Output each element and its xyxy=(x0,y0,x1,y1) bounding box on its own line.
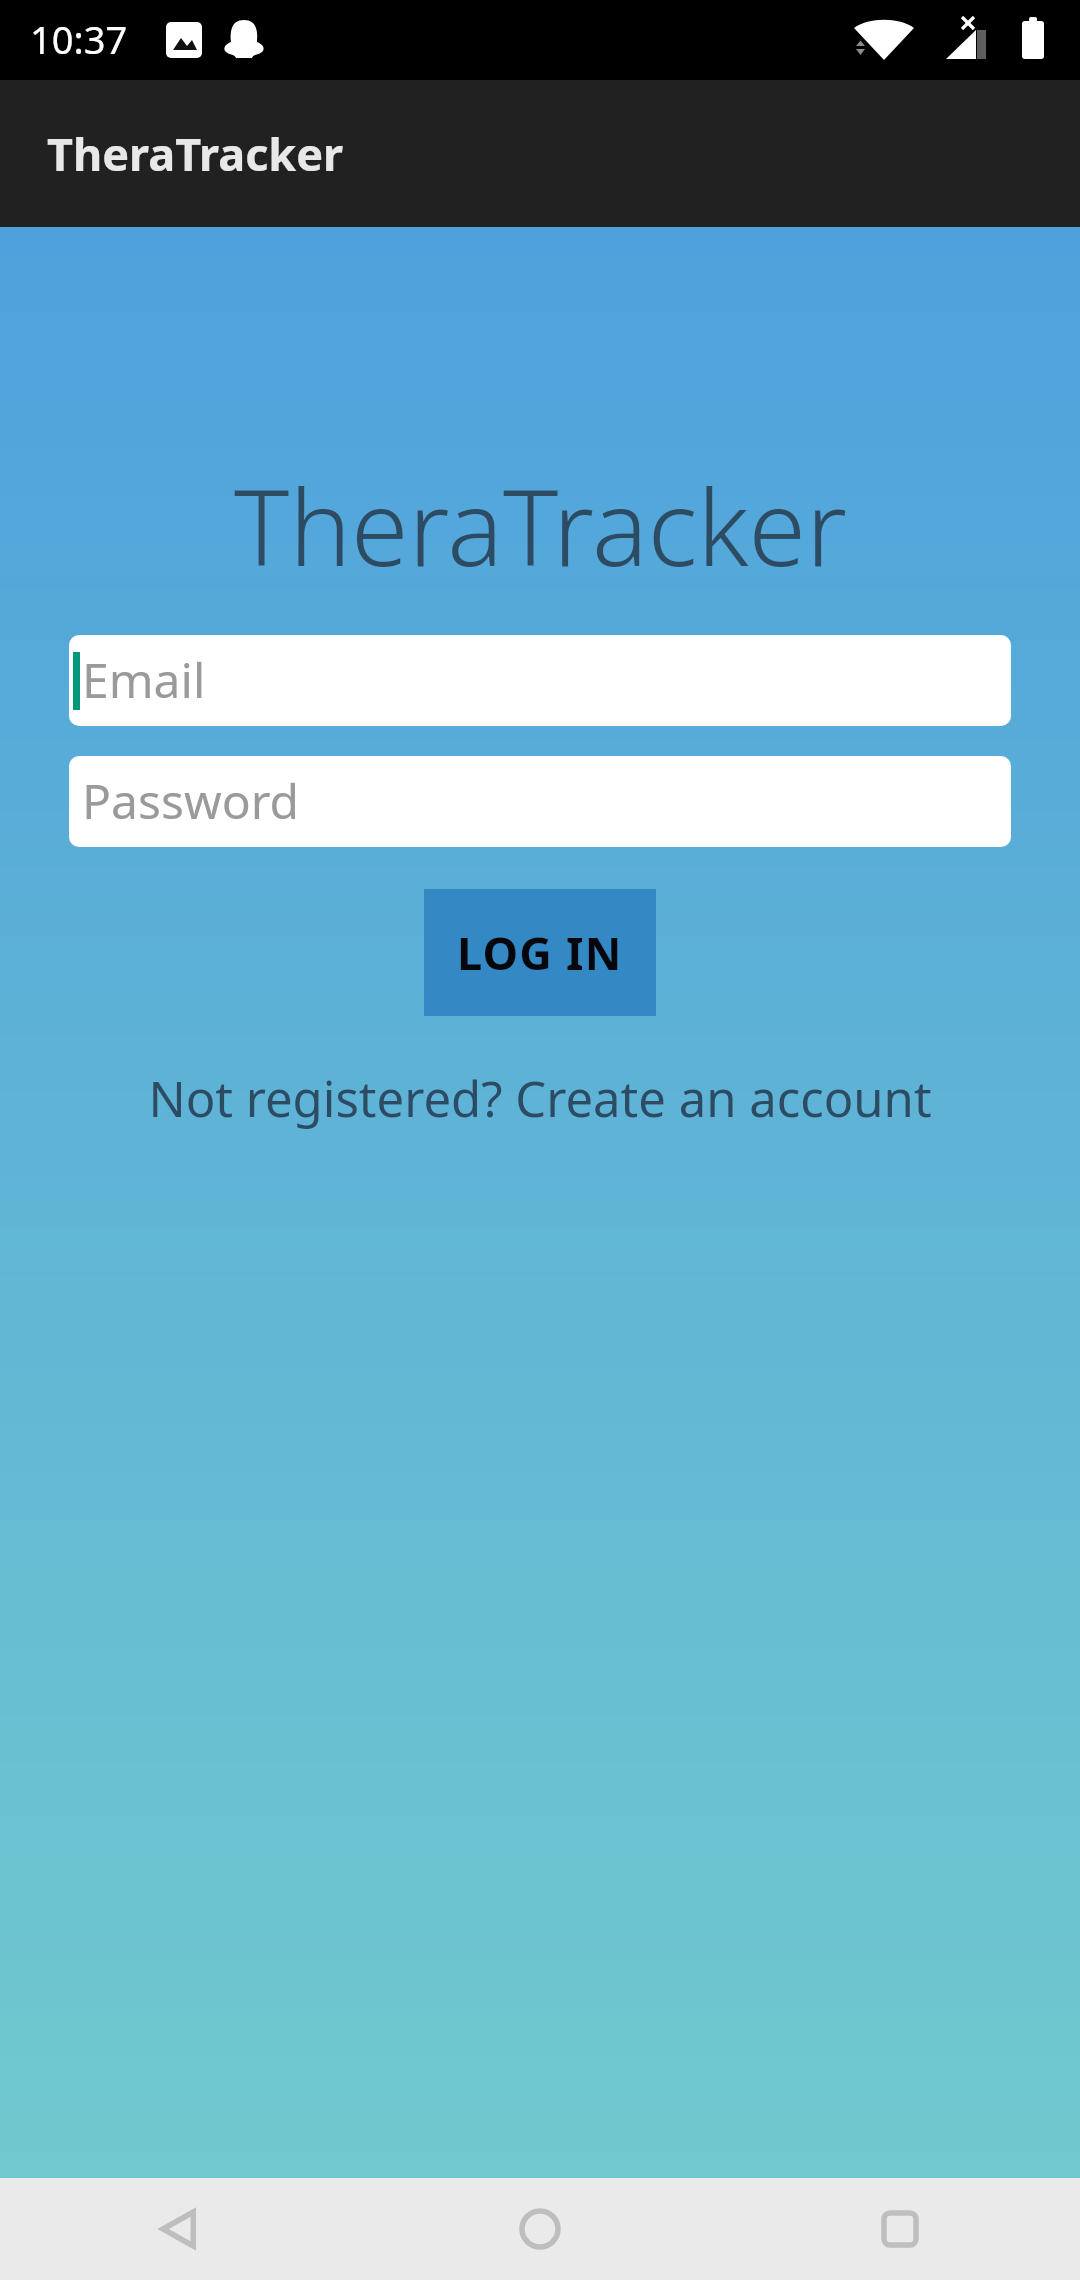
button[interactable]: Not registered? Create an account xyxy=(136,1059,944,1138)
button[interactable]: Back xyxy=(0,2178,360,2280)
staticText: LOG IN xyxy=(457,922,623,983)
button[interactable]: Recent apps xyxy=(720,2178,1080,2280)
button[interactable]: Password xyxy=(69,756,1011,847)
staticText: TheraTracker xyxy=(47,123,344,184)
staticText: TheraTracker xyxy=(234,455,847,597)
button[interactable]: Home xyxy=(360,2178,720,2280)
staticText: 10:37 xyxy=(30,13,128,65)
staticText: Password xyxy=(82,768,300,833)
button[interactable]: Email xyxy=(69,635,1011,726)
staticText: Email xyxy=(82,647,206,712)
button[interactable]: LOG IN xyxy=(424,889,656,1016)
